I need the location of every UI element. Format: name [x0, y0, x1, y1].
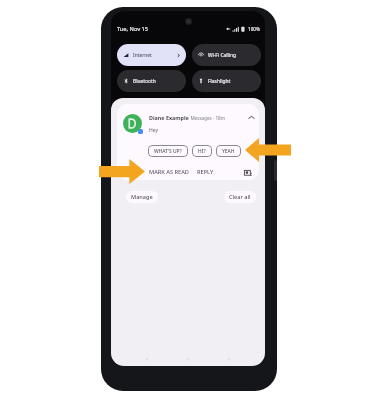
staticText: Manage [131, 193, 153, 201]
staticText: Diane Example [149, 114, 189, 121]
staticText: 100% [248, 26, 260, 32]
button[interactable]: Diane Example [117, 104, 259, 180]
staticText: MARK AS READ [149, 168, 189, 176]
button[interactable]: YEAH [216, 145, 241, 157]
staticText: YEAH [222, 148, 235, 155]
button[interactable]: Flashlight [192, 70, 261, 92]
button[interactable]: MARK AS READ [149, 166, 189, 178]
button[interactable]: Internet [117, 44, 186, 66]
button[interactable]: Bluetooth [117, 70, 186, 92]
button[interactable]: Collapse notification [245, 111, 257, 123]
button[interactable]: Wi-Fi Calling [192, 44, 261, 66]
staticText: · Messages · 18m [188, 115, 225, 121]
staticText: Internet [133, 52, 152, 59]
staticText: Tue, Nov 15 [117, 25, 149, 33]
staticText: HI? [198, 148, 206, 155]
button[interactable]: WHAT'S UP? [148, 145, 188, 157]
staticText: Flashlight [208, 78, 231, 85]
staticText: REPLY [197, 168, 214, 176]
button[interactable]: Attach image [243, 168, 252, 177]
button[interactable]: Clear all [224, 191, 256, 203]
staticText: WHAT'S UP? [154, 148, 182, 155]
button[interactable]: Navigation [224, 354, 234, 364]
staticText: Clear all [229, 193, 251, 201]
button[interactable]: REPLY [197, 166, 214, 178]
button[interactable]: Navigation [142, 354, 152, 364]
staticText: Wi-Fi Calling [208, 52, 237, 59]
button[interactable]: HI? [192, 145, 212, 157]
staticText: Hey [149, 127, 158, 134]
staticText: Bluetooth [133, 78, 156, 85]
button[interactable]: Navigation [183, 354, 193, 364]
button[interactable]: Manage [126, 191, 158, 203]
